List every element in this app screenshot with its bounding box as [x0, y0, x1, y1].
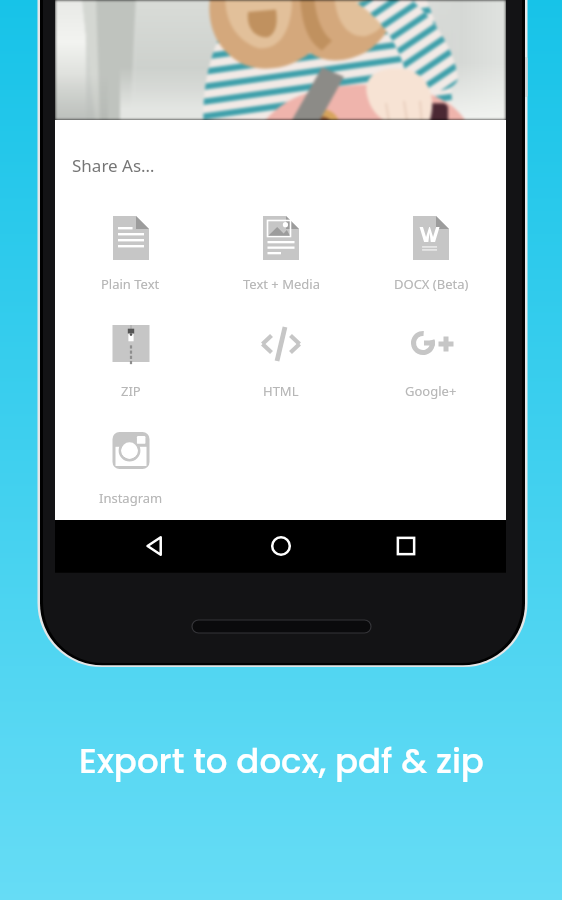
staticText: Share As… — [72, 154, 155, 177]
button[interactable]: Plain Text — [55, 197, 206, 304]
button[interactable]: ZIP — [55, 304, 206, 411]
staticText: Text + Media — [243, 275, 320, 293]
staticText: Google+ — [405, 382, 457, 400]
staticText: Export to docx, pdf & zip — [79, 737, 484, 785]
button[interactable]: Back — [131, 522, 179, 570]
button[interactable]: Text + Media — [206, 197, 356, 304]
staticText: ZIP — [121, 382, 141, 400]
staticText: Plain Text — [101, 275, 160, 293]
button[interactable]: Recent apps — [382, 522, 430, 570]
button[interactable]: Google+ — [356, 304, 506, 411]
staticText: HTML — [263, 382, 299, 400]
button[interactable]: DOCX (Beta) — [356, 197, 506, 304]
staticText: Instagram — [99, 489, 163, 507]
button[interactable]: HTML — [206, 304, 356, 411]
button[interactable]: Home — [257, 522, 305, 570]
button[interactable]: Instagram — [55, 411, 206, 518]
staticText: DOCX (Beta) — [394, 275, 469, 293]
